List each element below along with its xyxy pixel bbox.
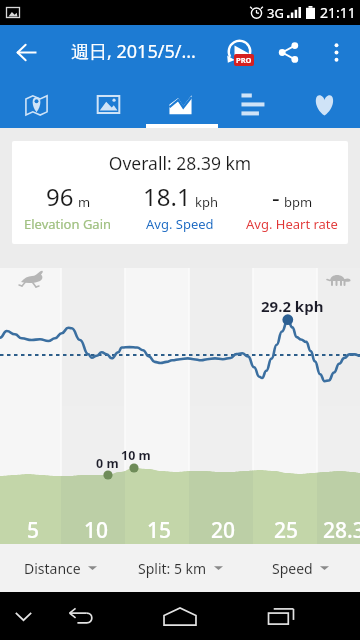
staticText: 15	[125, 516, 193, 545]
staticText: 25	[252, 516, 320, 545]
button[interactable]: Home	[157, 592, 203, 640]
staticText: 0 m	[96, 455, 119, 472]
staticText: 21:11	[320, 3, 356, 22]
staticText: kph	[195, 193, 218, 211]
button[interactable]: Upgrade to Pro	[217, 30, 261, 74]
button[interactable]: Hide keyboard	[0, 592, 46, 640]
button[interactable]: Map	[0, 78, 72, 128]
staticText: 3G	[267, 4, 284, 22]
button[interactable]: Navigate up	[0, 26, 52, 78]
staticText: Avg. Heart rate	[246, 215, 338, 233]
button[interactable]: Photos	[72, 78, 144, 128]
button[interactable]: Split: 5 km	[120, 544, 240, 592]
staticText: PRO	[236, 55, 252, 65]
staticText: -	[272, 180, 280, 213]
staticText: bpm	[284, 193, 313, 211]
button[interactable]: Chart	[144, 78, 216, 128]
button[interactable]: More options	[316, 32, 356, 72]
button[interactable]: Speed	[240, 544, 360, 592]
staticText: 18.1	[143, 180, 191, 213]
staticText: Split: 5 km	[138, 559, 207, 578]
button[interactable]: Distance	[0, 544, 120, 592]
button[interactable]: Splits	[216, 78, 288, 128]
button[interactable]: Recent apps	[258, 592, 304, 640]
staticText: Speed	[272, 559, 313, 578]
staticText: 29.2 kph	[261, 296, 324, 316]
button[interactable]: Share	[265, 29, 311, 75]
staticText: m	[78, 193, 91, 211]
button[interactable]: Back	[57, 592, 103, 640]
staticText: Avg. Speed	[146, 215, 214, 233]
staticText: Elevation Gain	[24, 215, 112, 233]
staticText: 28.3	[323, 516, 360, 545]
button[interactable]: Heart rate	[288, 78, 360, 128]
staticText: 20	[189, 516, 257, 545]
staticText: 10 m	[121, 447, 151, 464]
staticText: Distance	[24, 559, 81, 578]
staticText: 5	[0, 516, 67, 545]
staticText: 96	[46, 180, 74, 213]
staticText: 週日, 2015/5/...	[71, 39, 196, 64]
staticText: Overall: 28.39 km	[12, 151, 348, 175]
staticText: 10	[62, 516, 130, 545]
